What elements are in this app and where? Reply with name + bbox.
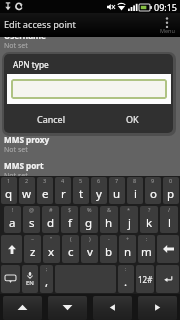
button[interactable]: Forward [138,296,177,320]
staticText: # [49,206,53,213]
staticText: $ [68,206,72,213]
staticText: , [45,274,49,290]
button[interactable]: Voice input, English [22,265,38,293]
button[interactable]: 5 [73,177,89,204]
staticText: j [128,215,131,231]
button[interactable]: Username [0,29,180,55]
button[interactable]: ? [140,206,158,233]
staticText: : [146,235,148,242]
button[interactable]: Back [93,296,132,320]
button[interactable]: + [119,235,136,263]
staticText: Menu [160,27,175,34]
staticText: . [124,274,128,290]
button[interactable]: $ [61,206,78,233]
button[interactable]: # [42,206,59,233]
button[interactable]: * [120,206,138,233]
staticText: " [50,235,53,242]
staticText: b [105,244,113,260]
staticText: Not set [4,145,28,155]
staticText: l [168,215,171,231]
button[interactable]: 6 [91,177,107,204]
staticText: / [168,206,171,213]
staticText: r [61,186,66,202]
staticText: Edit access point [4,18,76,31]
button[interactable]: 7 [109,177,125,204]
button[interactable]: ; [40,265,53,293]
button[interactable]: : [118,265,134,293]
staticText: Not set [4,93,28,103]
staticText: y [96,186,102,202]
button[interactable]: 8 [127,177,143,204]
button[interactable]: 0 [163,177,179,204]
staticText: OK [126,113,139,125]
staticText: Not set [4,171,28,181]
staticText: m [141,244,152,260]
staticText: t [79,186,84,202]
button[interactable]: ) [81,235,98,263]
staticText: 09:15 [154,1,178,13]
staticText: x [48,244,55,260]
staticText: MMS port [4,160,44,171]
button[interactable]: / [160,206,178,233]
staticText: 8 [133,177,137,184]
button[interactable]: % [80,206,98,233]
staticText: z [30,244,36,260]
button[interactable]: Backspace [157,235,179,263]
staticText: v [87,244,93,260]
button[interactable]: Password [0,55,180,81]
staticText: : [125,265,127,272]
staticText: 4 [61,177,65,184]
button[interactable]: & [100,206,118,233]
staticText: @ [29,206,34,213]
staticText: Cancel [37,113,66,125]
button[interactable]: MMS port [0,159,180,185]
staticText: ~ [31,235,35,242]
button[interactable]: " [43,235,60,263]
staticText: w [22,186,32,202]
button[interactable]: MMS proxy [0,133,180,159]
button[interactable]: Server [0,81,180,107]
button[interactable]: MMSC [0,107,180,133]
button[interactable]: ( [62,235,79,263]
staticText: ! [12,206,14,213]
staticText: Server [4,82,31,93]
staticText: i [134,186,137,202]
button[interactable]: Symbols [136,265,154,293]
staticText: n [124,244,132,260]
button[interactable]: ! [4,206,21,233]
button[interactable]: Keyboard settings [1,265,20,293]
staticText: d [47,215,55,231]
button[interactable]: Enter [156,265,179,293]
button[interactable]: 3 [37,177,53,204]
staticText: EN [26,279,34,287]
button[interactable] [11,79,167,99]
staticText: Password [4,56,44,67]
staticText: APN type [13,59,49,70]
button[interactable]: Cancel [11,104,92,133]
button[interactable]: OK [92,104,173,133]
staticText: + [126,235,130,242]
button[interactable]: Menu [154,13,180,37]
button[interactable]: - [100,235,117,263]
button[interactable]: 9 [145,177,161,204]
staticText: 3 [43,177,47,184]
staticText: * [127,206,131,213]
button[interactable]: ~ [24,235,41,263]
button[interactable]: : [138,235,155,263]
staticText: % [87,206,92,213]
button[interactable]: 1 [1,177,17,204]
button[interactable]: Down [48,296,87,320]
staticText: Not set [4,41,28,51]
staticText: h [105,215,113,231]
staticText: ( [70,235,72,242]
staticText: c [68,244,74,260]
button[interactable]: 2 [19,177,35,204]
staticText: g [85,215,93,231]
button[interactable]: @ [23,206,40,233]
button[interactable]: Shift [1,235,22,263]
button[interactable]: 4 [55,177,71,204]
button[interactable]: Up [3,296,42,320]
